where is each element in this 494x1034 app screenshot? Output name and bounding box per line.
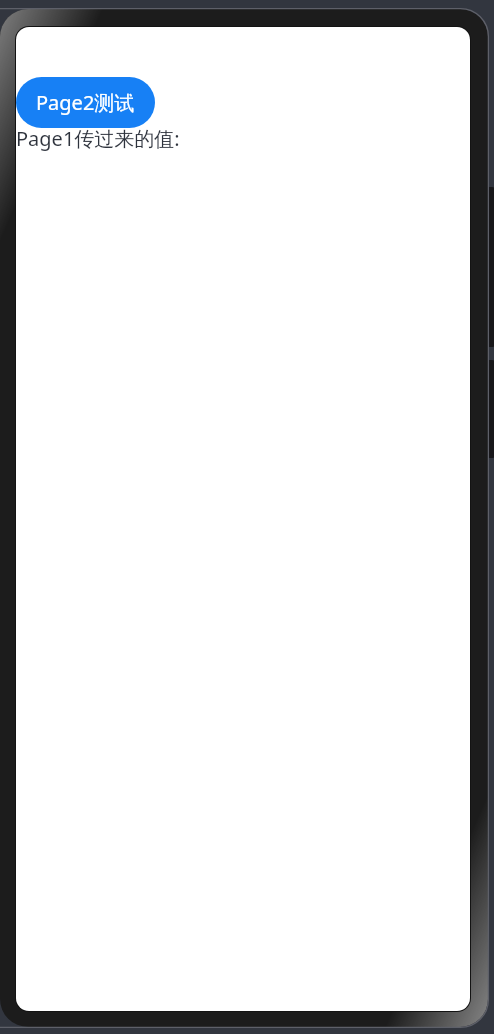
staticText: Page2测试 xyxy=(36,89,135,116)
staticText: Page1传过来的值: xyxy=(16,125,180,152)
button[interactable]: Page2测试 xyxy=(16,77,155,128)
